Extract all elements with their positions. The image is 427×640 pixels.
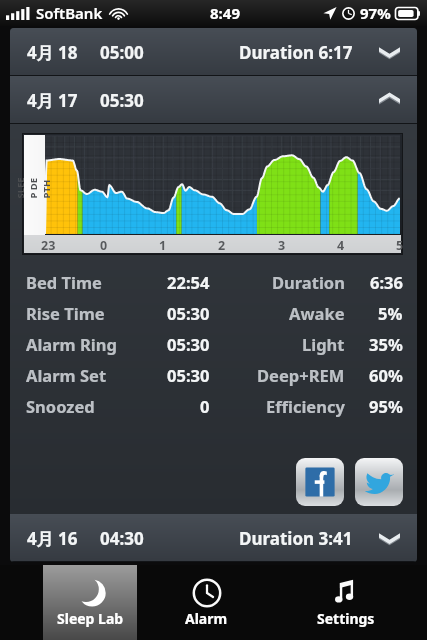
staticText: 05:30	[100, 89, 144, 112]
button[interactable]: Settings	[276, 565, 415, 640]
button[interactable]: Share on Twitter	[355, 458, 403, 506]
staticText: Duration	[272, 271, 345, 293]
staticText: 35%	[369, 333, 403, 355]
staticText: 2	[218, 237, 226, 254]
staticText: 22:54	[167, 271, 210, 293]
staticText: 1	[159, 237, 167, 254]
button[interactable]: Sleep Lab	[43, 565, 137, 640]
staticText: 4月	[27, 527, 54, 550]
staticText: 0	[100, 237, 108, 254]
staticText: Alarm Ring	[26, 333, 117, 355]
staticText: Snoozed	[26, 395, 95, 417]
staticText: Bed Time	[26, 271, 102, 293]
button[interactable]: 4月	[10, 76, 417, 124]
staticText: 95%	[369, 395, 403, 417]
staticText: 97%	[360, 3, 391, 23]
staticText: SoftBank	[36, 3, 103, 23]
staticText: Duration 6:17	[239, 41, 353, 64]
staticText: 05:30	[167, 364, 210, 386]
staticText: SLEEP DEPTH	[13, 176, 52, 198]
button[interactable]: Alarm	[137, 565, 276, 640]
staticText: Rise Time	[26, 302, 105, 324]
staticText: Alarm Set	[26, 364, 107, 386]
staticText: 8:49	[210, 3, 240, 23]
staticText: 4月	[27, 89, 54, 112]
staticText: 6:36	[370, 271, 403, 293]
staticText: 5	[396, 237, 404, 254]
staticText: Awake	[289, 302, 345, 324]
staticText: 3	[278, 237, 286, 254]
staticText: 60%	[369, 364, 403, 386]
staticText: 05:30	[167, 302, 210, 324]
staticText: 23	[41, 237, 56, 254]
staticText: Duration 3:41	[239, 527, 353, 550]
staticText: 4	[337, 237, 345, 254]
staticText: Light	[302, 333, 345, 355]
staticText: 04:30	[100, 527, 144, 550]
button[interactable]: Share on Facebook	[296, 458, 344, 506]
staticText: Alarm	[185, 609, 228, 628]
staticText: 05:30	[167, 333, 210, 355]
staticText: 17	[58, 89, 78, 112]
staticText: 0	[200, 395, 210, 417]
staticText: Settings	[317, 609, 375, 628]
staticText: 5%	[378, 302, 403, 324]
staticText: Sleep Lab	[57, 609, 124, 628]
button[interactable]: 4月	[10, 514, 417, 562]
staticText: 05:00	[100, 41, 144, 64]
staticText: 4月	[27, 41, 54, 64]
button[interactable]: 4月	[10, 28, 417, 76]
staticText: Efficiency	[266, 395, 345, 417]
staticText: 18	[58, 41, 78, 64]
staticText: Deep+REM	[257, 364, 345, 386]
staticText: 16	[58, 527, 78, 550]
